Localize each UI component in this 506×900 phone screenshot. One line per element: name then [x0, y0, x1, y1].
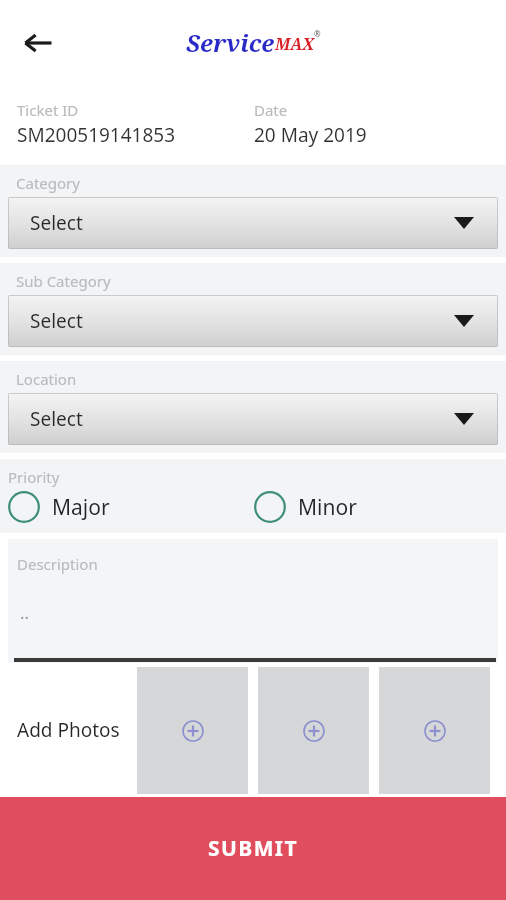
staticText: Priority — [8, 467, 60, 487]
button[interactable]: Minor — [254, 491, 357, 523]
button[interactable]: Back — [14, 19, 62, 67]
button[interactable]: Description — [8, 539, 498, 663]
button[interactable]: Select — [8, 393, 498, 445]
staticText: Major — [52, 493, 110, 522]
staticText: Date — [254, 100, 288, 120]
staticText: ® — [314, 28, 321, 39]
staticText: Service — [186, 26, 275, 59]
button[interactable]: Add photo — [379, 667, 490, 794]
staticText: Add Photos — [17, 717, 120, 743]
staticText: 20 May 2019 — [254, 122, 367, 148]
staticText: Select — [30, 406, 83, 432]
staticText: Location — [16, 369, 77, 389]
staticText: SUBMIT — [208, 834, 298, 863]
button[interactable]: Select — [8, 295, 498, 347]
staticText: SM200519141853 — [17, 122, 176, 148]
staticText: Select — [30, 308, 83, 334]
staticText: Description — [17, 554, 98, 574]
staticText: Sub Category — [16, 271, 111, 291]
button[interactable]: Add photo — [137, 667, 248, 794]
button[interactable]: SUBMIT — [0, 797, 506, 900]
staticText: .. — [20, 601, 30, 624]
staticText: Select — [30, 210, 83, 236]
button[interactable]: Major — [8, 491, 110, 523]
button[interactable]: Select — [8, 197, 498, 249]
staticText: Category — [16, 173, 80, 193]
staticText: Ticket ID — [17, 100, 79, 120]
staticText: Minor — [298, 493, 357, 522]
button[interactable]: Add photo — [258, 667, 369, 794]
staticText: MAX — [275, 33, 314, 55]
